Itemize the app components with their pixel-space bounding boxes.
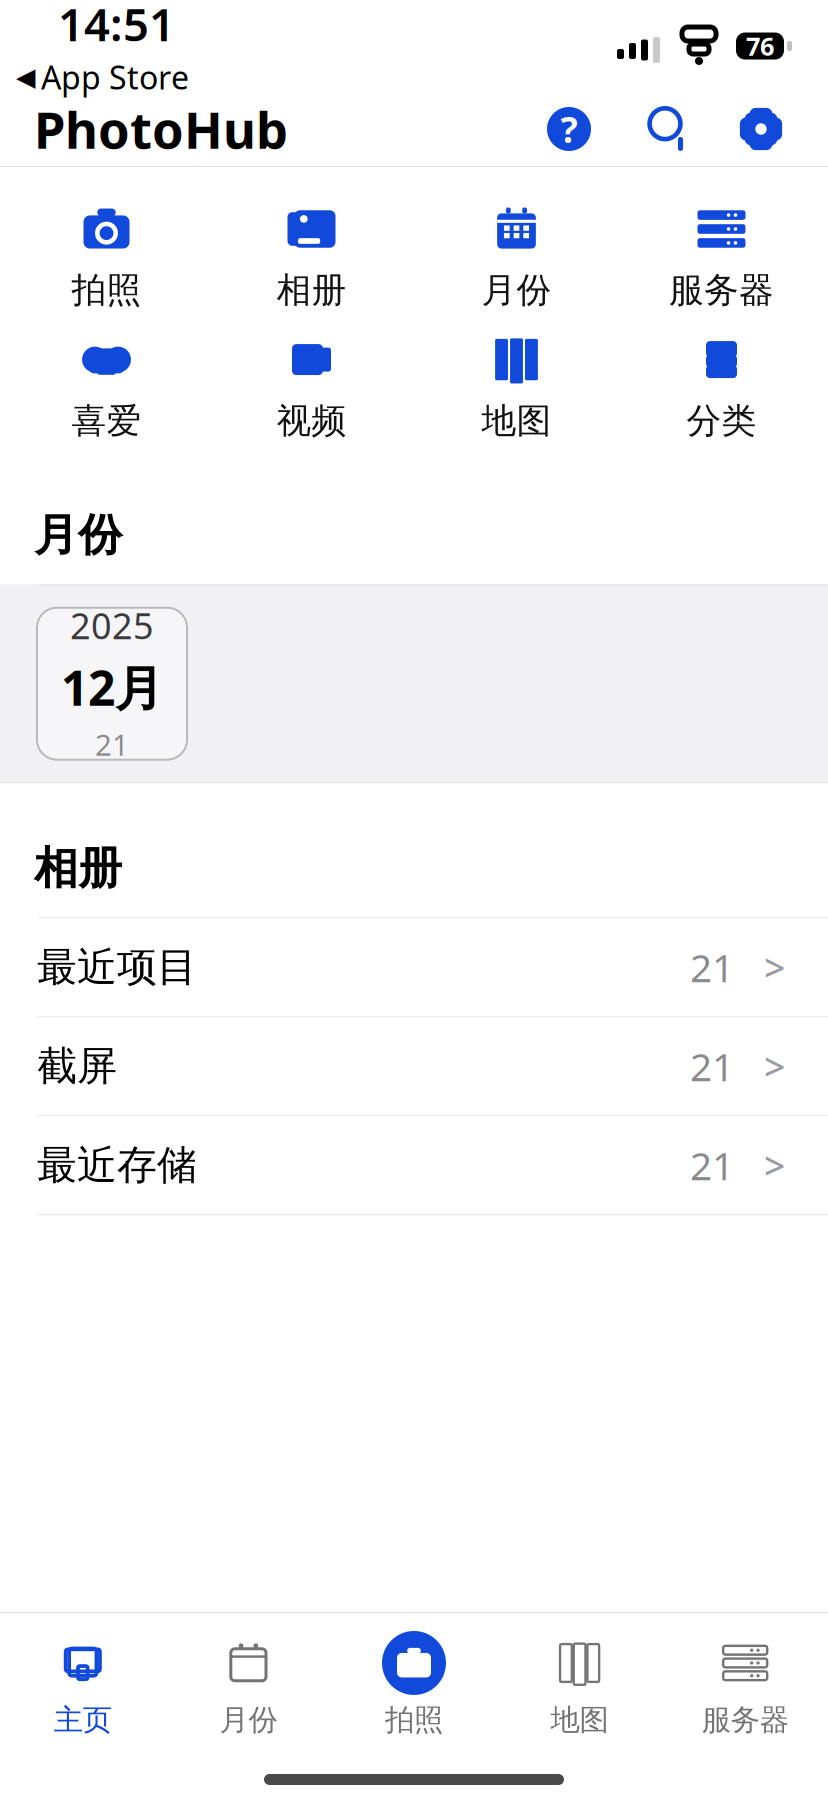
button[interactable]: 最近存储 [0, 1116, 828, 1215]
button[interactable]: 2025 [37, 608, 187, 760]
staticText: 截屏 [37, 1042, 117, 1091]
staticText: 76 [746, 29, 774, 63]
staticText: PhotoHub [34, 95, 288, 163]
staticText: 视频 [276, 400, 346, 442]
staticText: 地图 [481, 400, 551, 442]
staticText: 服务器 [702, 1702, 789, 1738]
staticText: 月份 [34, 508, 122, 562]
button[interactable]: 拍照 [4, 197, 209, 318]
staticText: 2025 [70, 601, 154, 649]
staticText: 相册 [34, 841, 122, 895]
staticText: 月份 [481, 269, 551, 312]
staticText: 喜爱 [71, 400, 141, 442]
button[interactable]: 截屏 [0, 1017, 828, 1116]
staticText: > [764, 1041, 785, 1091]
staticText: ? [560, 105, 577, 153]
staticText: 21 [690, 942, 734, 993]
button[interactable]: 喜爱 [4, 328, 209, 448]
staticText: > [764, 1140, 785, 1190]
button[interactable]: 主页 [0, 1620, 166, 1738]
button[interactable]: 拍照 [331, 1620, 497, 1738]
button[interactable]: Help [536, 96, 602, 162]
staticText: App Store [41, 56, 189, 98]
staticText: 12月 [61, 655, 163, 719]
button[interactable]: 地图 [414, 328, 619, 448]
button[interactable]: 视频 [209, 328, 414, 448]
staticText: 最近项目 [37, 943, 197, 992]
button[interactable]: Search [632, 96, 698, 162]
staticText: 服务器 [669, 269, 774, 312]
button[interactable]: 月份 [414, 197, 619, 318]
staticText: 拍照 [71, 269, 141, 312]
button[interactable]: 服务器 [619, 197, 824, 318]
staticText: ◀ [16, 63, 35, 91]
staticText: 月份 [219, 1702, 277, 1738]
staticText: > [764, 942, 785, 992]
staticText: 最近存储 [37, 1141, 197, 1190]
button[interactable]: 月份 [166, 1620, 331, 1738]
button[interactable]: Settings [728, 96, 794, 162]
staticText: 相册 [276, 269, 346, 312]
staticText: 21 [690, 1041, 734, 1092]
staticText: 14:51 [58, 0, 175, 54]
staticText: 主页 [54, 1702, 112, 1738]
staticText: 分类 [686, 400, 756, 442]
button[interactable]: 相册 [209, 197, 414, 318]
staticText: 地图 [551, 1702, 609, 1738]
staticText: 21 [95, 725, 129, 764]
button[interactable]: 最近项目 [0, 918, 828, 1017]
button[interactable]: 服务器 [662, 1620, 828, 1738]
staticText: 21 [690, 1140, 734, 1191]
staticText: 拍照 [385, 1702, 443, 1738]
button[interactable]: 分类 [619, 328, 824, 448]
button[interactable]: 地图 [497, 1620, 662, 1738]
